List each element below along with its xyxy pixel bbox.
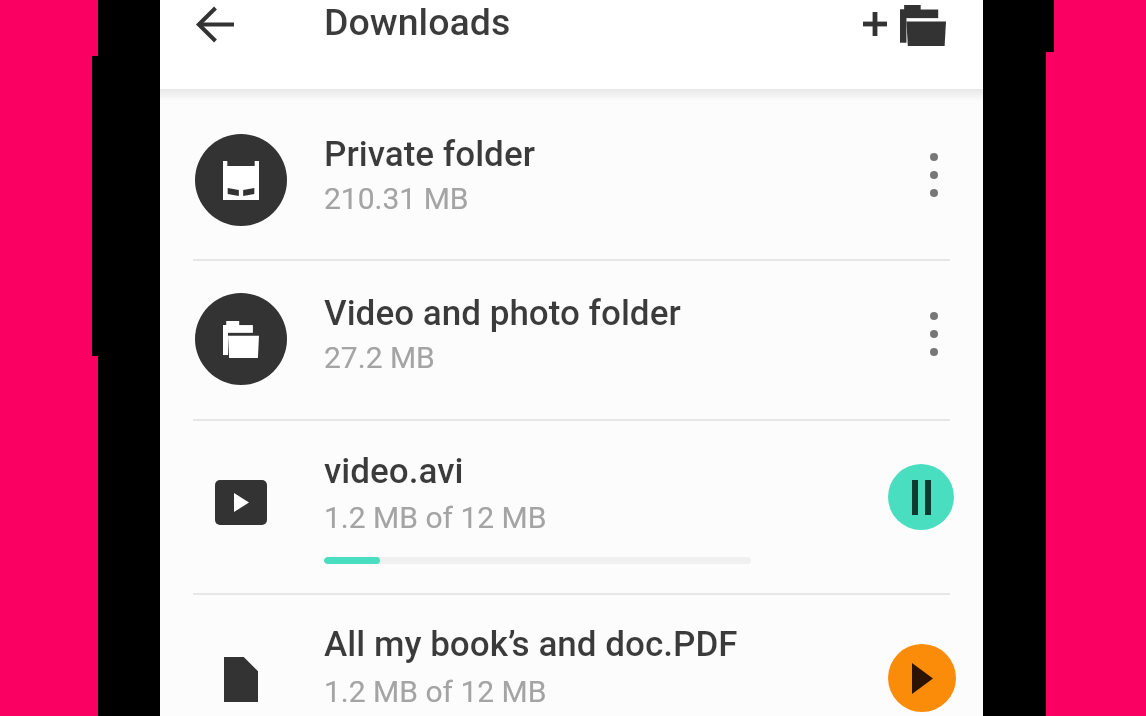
- staticText: 1.2 MB of 12 MB: [324, 500, 547, 535]
- staticText: video.avi: [324, 451, 464, 492]
- staticText: Video and photo folder: [324, 293, 681, 334]
- staticText: Downloads: [324, 0, 511, 44]
- button[interactable]: Pause download: [888, 464, 954, 530]
- staticText: 27.2 MB: [324, 340, 435, 375]
- button[interactable]: Video and photo folder: [160, 260, 983, 419]
- staticText: 210.31 MB: [324, 181, 469, 216]
- button[interactable]: More options: [906, 147, 962, 203]
- staticText: All my book’s and doc.PDF: [324, 624, 738, 665]
- button[interactable]: Add download: [849, 0, 901, 50]
- staticText: Private folder: [324, 134, 535, 175]
- button[interactable]: New folder: [893, 0, 953, 55]
- button[interactable]: Resume download: [888, 644, 956, 712]
- button[interactable]: All my book’s and doc.PDF: [160, 594, 983, 716]
- button[interactable]: More options: [906, 306, 962, 362]
- button[interactable]: video.avi: [160, 420, 983, 593]
- button[interactable]: Back: [185, 0, 245, 54]
- button[interactable]: Private folder: [160, 89, 983, 259]
- staticText: 1.2 MB of 12 MB: [324, 674, 547, 709]
